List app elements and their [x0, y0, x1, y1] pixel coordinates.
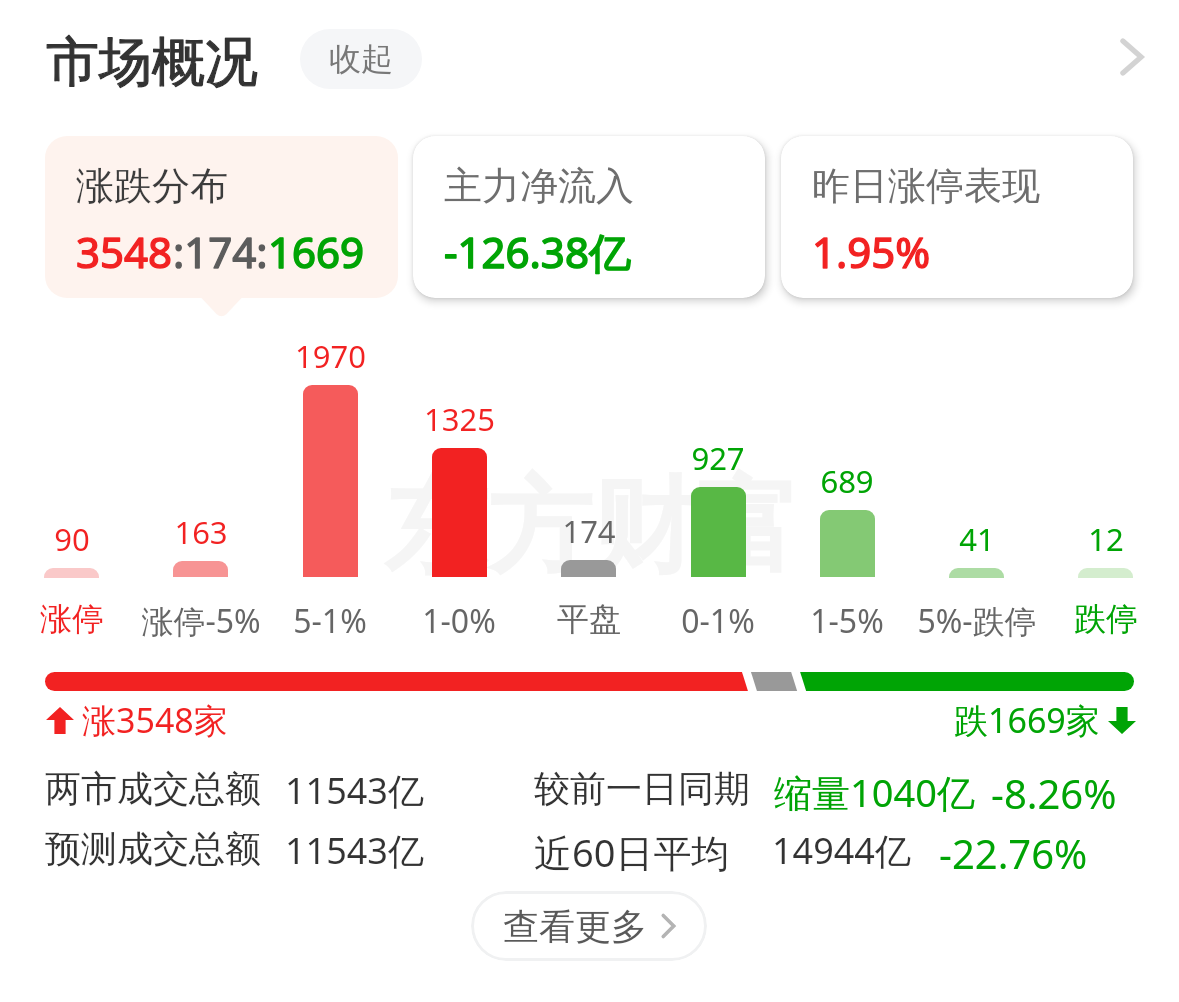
button[interactable]: 查看更多: [471, 891, 707, 961]
button[interactable]: 涨3548家: [46, 697, 228, 743]
staticText: 跌停: [1074, 599, 1138, 639]
staticText: 较前一日同期: [534, 766, 750, 811]
staticText: 收起: [329, 39, 393, 79]
button[interactable]: 昨日涨停表现: [781, 136, 1133, 298]
staticText: 涨3548家: [82, 697, 228, 743]
staticText: 缩量1040亿: [774, 766, 975, 818]
button[interactable]: 主力净流入: [413, 136, 765, 298]
staticText: 5-1%: [293, 599, 367, 643]
staticText: 主力净流入: [444, 162, 634, 210]
staticText: 涨跌分布: [76, 162, 228, 210]
staticText: 1669: [268, 223, 365, 280]
staticText: 3548: [76, 223, 173, 280]
button[interactable]: 近60日平均: [534, 826, 1088, 880]
staticText: 174: [562, 510, 616, 552]
staticText: 1.95%: [812, 223, 931, 280]
staticText: 市场概况: [46, 29, 258, 96]
button[interactable]: 涨跌分布: [45, 136, 398, 298]
staticText: -8.26%: [991, 766, 1117, 820]
staticText: 涨停-5%: [141, 599, 261, 643]
staticText: 预测成交总额: [45, 826, 261, 871]
staticText: -22.76%: [939, 826, 1088, 880]
staticText: 927: [691, 437, 745, 479]
staticText: -126.38亿: [444, 223, 631, 280]
staticText: 14944亿: [772, 826, 911, 875]
button[interactable]: 跌1669家: [954, 697, 1136, 743]
staticText: 平盘: [557, 599, 621, 639]
staticText: 1325: [424, 398, 495, 440]
button[interactable]: 市场概况: [46, 29, 258, 96]
staticText: 163: [174, 511, 228, 553]
staticText: 3548: [76, 223, 173, 280]
staticText: 昨日涨停表现: [812, 162, 1040, 210]
button[interactable]: 两市成交总额: [45, 766, 424, 815]
button[interactable]: 较前一日同期: [534, 766, 1117, 820]
button[interactable]: 预测成交总额: [45, 826, 424, 875]
staticText: 12: [1088, 518, 1124, 560]
staticText: 689: [820, 460, 874, 502]
staticText: 0-1%: [681, 599, 755, 643]
staticText: 两市成交总额: [45, 766, 261, 811]
staticText: 近60日平均: [534, 826, 730, 878]
staticText: 跌1669家: [954, 697, 1100, 743]
staticText: 涨停: [40, 599, 104, 639]
staticText: :174:: [173, 223, 268, 280]
staticText: 1669: [268, 223, 365, 280]
staticText: 1.95%: [812, 223, 931, 280]
staticText: 查看更多: [503, 904, 647, 949]
staticText: 41: [959, 518, 995, 560]
staticText: :174:: [173, 223, 268, 280]
staticText: 5%-跌停: [917, 599, 1037, 643]
staticText: 11543亿: [285, 826, 424, 875]
staticText: 东方财富: [384, 462, 800, 593]
staticText: -126.38亿: [444, 223, 631, 280]
staticText: 1-0%: [422, 599, 496, 643]
staticText: 90: [54, 518, 90, 560]
button[interactable]: 查看详情: [1094, 19, 1170, 95]
staticText: 1970: [295, 335, 366, 377]
staticText: 11543亿: [285, 766, 424, 815]
staticText: 市场概况: [46, 29, 258, 96]
staticText: 1-5%: [810, 599, 884, 643]
button[interactable]: 收起: [300, 29, 422, 89]
